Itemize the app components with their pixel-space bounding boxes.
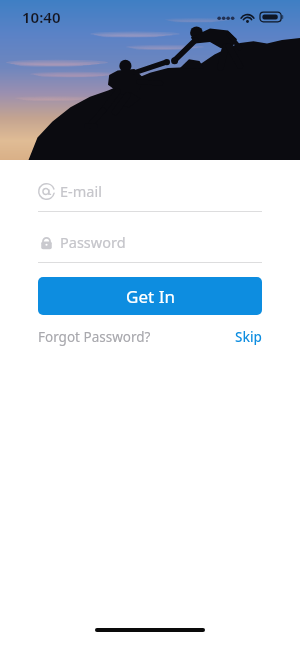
button[interactable]: Forgot Password? <box>38 328 151 346</box>
staticText: Forgot Password? <box>38 328 151 346</box>
staticText: Get In <box>126 285 175 308</box>
staticText: Password <box>60 232 126 252</box>
staticText: 10:40 <box>22 7 61 27</box>
button[interactable]: Skip <box>235 328 262 346</box>
button[interactable]: Password <box>38 229 262 263</box>
button[interactable]: E-mail <box>38 178 262 212</box>
button[interactable]: Get In <box>38 277 262 315</box>
staticText: Skip <box>235 328 262 346</box>
staticText: E-mail <box>60 181 102 201</box>
